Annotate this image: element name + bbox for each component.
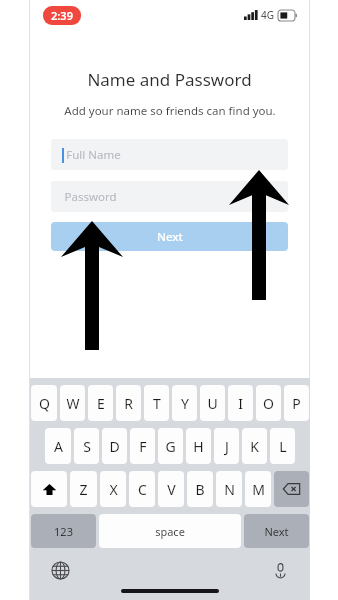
staticText: Password — [64, 189, 117, 205]
staticText: S — [83, 437, 91, 456]
staticText: 4G — [261, 8, 274, 22]
staticText: A — [54, 437, 63, 456]
button[interactable]: K — [242, 428, 267, 464]
button[interactable]: J — [214, 428, 239, 464]
button[interactable]: Q — [31, 385, 57, 421]
button[interactable]: 123 — [31, 514, 96, 548]
staticText: Add your name so friends can find you. — [64, 103, 276, 119]
button[interactable]: Next — [51, 222, 288, 251]
button[interactable]: R — [116, 385, 141, 421]
staticText: Y — [181, 394, 189, 413]
button[interactable]: B — [187, 471, 213, 507]
staticText: G — [165, 437, 176, 456]
button[interactable]: C — [129, 471, 155, 507]
button[interactable]: A — [45, 428, 71, 464]
button[interactable]: Change keyboard language — [47, 557, 73, 583]
staticText: T — [153, 394, 161, 413]
button[interactable]: X — [100, 471, 126, 507]
staticText: R — [124, 394, 133, 413]
staticText: 2:39 — [51, 8, 73, 23]
button[interactable]: O — [256, 385, 281, 421]
staticText: I — [238, 394, 243, 413]
button[interactable]: G — [158, 428, 183, 464]
staticText: Next — [264, 524, 289, 539]
button[interactable]: U — [200, 385, 225, 421]
staticText: U — [207, 394, 218, 413]
staticText: D — [109, 437, 120, 456]
staticText: B — [195, 480, 205, 499]
staticText: P — [292, 394, 301, 413]
button[interactable]: Next — [244, 514, 309, 548]
staticText: Q — [39, 394, 50, 413]
button[interactable]: L — [270, 428, 295, 464]
staticText: N — [224, 480, 235, 499]
staticText: H — [193, 437, 204, 456]
staticText: J — [225, 437, 229, 456]
staticText: L — [279, 437, 287, 456]
button[interactable]: S — [74, 428, 99, 464]
staticText: C — [138, 480, 147, 499]
staticText: F — [139, 437, 147, 456]
button[interactable]: Password — [51, 181, 288, 212]
button[interactable]: Y — [172, 385, 197, 421]
staticText: W — [66, 394, 80, 413]
button[interactable]: M — [245, 471, 271, 507]
button[interactable]: Z — [70, 471, 97, 507]
staticText: O — [263, 394, 274, 413]
button[interactable]: Backspace — [274, 471, 309, 507]
button[interactable]: Voice input — [267, 557, 293, 583]
button[interactable]: space — [99, 514, 241, 548]
button[interactable]: E — [88, 385, 113, 421]
button[interactable]: H — [186, 428, 211, 464]
button[interactable]: Shift — [31, 471, 67, 507]
button[interactable]: N — [216, 471, 242, 507]
button[interactable]: D — [102, 428, 127, 464]
staticText: Name and Password — [87, 68, 252, 91]
staticText: space — [155, 524, 185, 539]
button[interactable]: V — [158, 471, 184, 507]
staticText: X — [109, 480, 118, 499]
staticText: K — [250, 437, 259, 456]
staticText: Z — [79, 480, 88, 499]
staticText: Next — [157, 229, 183, 245]
staticText: M — [252, 480, 265, 499]
staticText: Full Name — [66, 147, 121, 163]
staticText: V — [167, 480, 176, 499]
staticText: 123 — [54, 524, 73, 539]
staticText: E — [97, 394, 105, 413]
button[interactable]: F — [130, 428, 155, 464]
button[interactable]: P — [284, 385, 309, 421]
button[interactable]: T — [144, 385, 169, 421]
button[interactable]: Full Name — [51, 139, 288, 170]
button[interactable]: W — [60, 385, 85, 421]
button[interactable]: I — [228, 385, 253, 421]
